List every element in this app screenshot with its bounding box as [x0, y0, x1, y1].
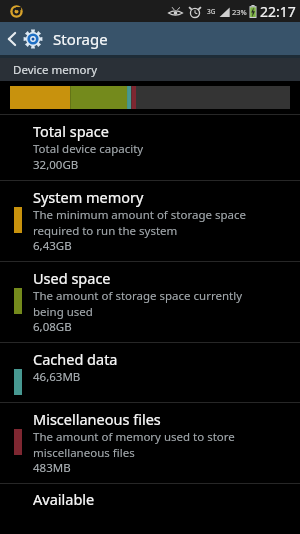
staticText: Miscellaneous files [33, 409, 161, 429]
staticText: The amount of memory used to store misce… [33, 429, 235, 460]
staticText: 6,43GB [33, 238, 72, 254]
staticText: 6,08GB [33, 319, 72, 335]
staticText: Storage [53, 29, 108, 49]
button[interactable]: Back [0, 27, 20, 51]
button[interactable]: System memory [0, 181, 300, 261]
button[interactable]: Miscellaneous files [0, 403, 300, 483]
staticText: 32,00GB [33, 157, 79, 173]
staticText: Device memory [13, 62, 98, 78]
staticText: 483MB [33, 460, 71, 476]
staticText: The minimum amount of storage space requ… [33, 207, 246, 238]
button[interactable]: Settings [23, 29, 43, 49]
staticText: System memory [33, 187, 144, 207]
staticText: 22:17 [260, 2, 296, 21]
staticText: Total space [33, 121, 109, 141]
button[interactable]: Used space [0, 262, 300, 342]
staticText: Used space [33, 268, 111, 288]
staticText: 23% [232, 7, 247, 17]
staticText: 3G [207, 7, 216, 16]
button[interactable]: Total space [0, 115, 300, 180]
button[interactable]: Available [0, 484, 300, 514]
staticText: Total device capacity [33, 141, 144, 157]
button[interactable]: Cached data [0, 343, 300, 402]
staticText: Available [33, 489, 95, 509]
staticText: Cached data [33, 349, 118, 369]
staticText: The amount of storage space currently be… [33, 288, 243, 319]
staticText: 46,63MB [33, 369, 81, 385]
